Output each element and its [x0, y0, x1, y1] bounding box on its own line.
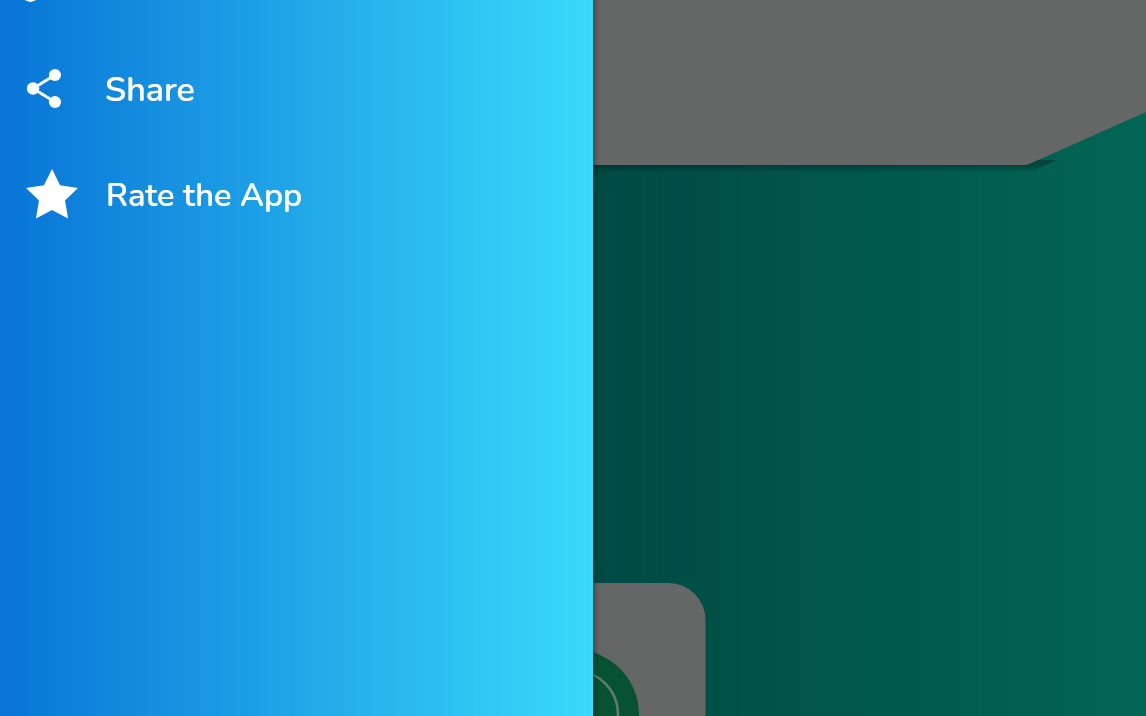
button[interactable]: Share	[0, 52, 593, 126]
other: Share	[27, 69, 61, 108]
staticText: Share	[105, 67, 195, 113]
other: Privacy Policy	[11, 0, 50, 2]
other: Rate the App	[26, 169, 78, 221]
button[interactable]: Rate the App	[0, 158, 593, 232]
staticText: Rate the App	[106, 173, 303, 217]
